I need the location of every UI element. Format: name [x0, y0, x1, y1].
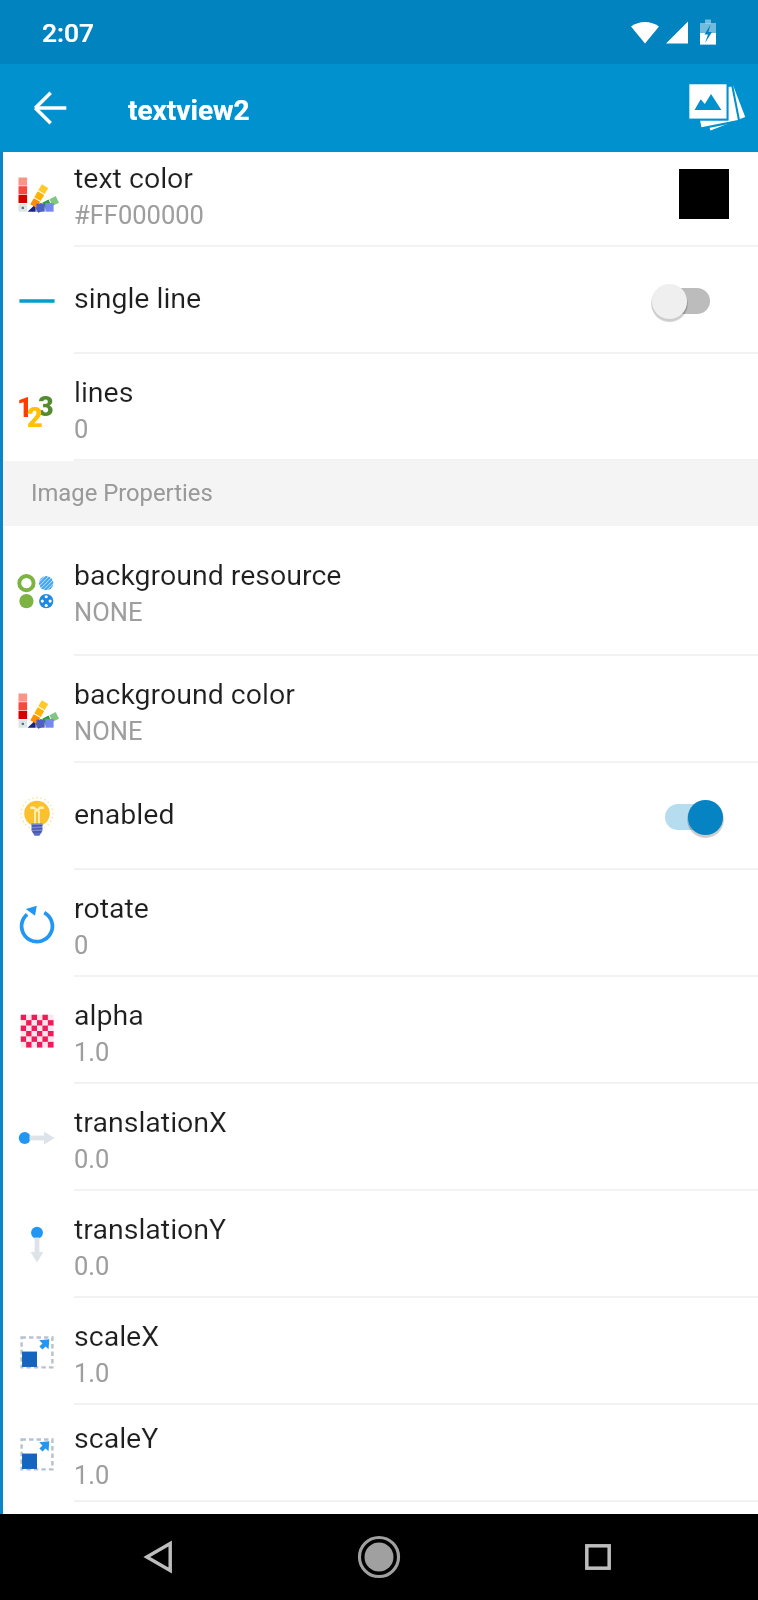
staticText: background resource	[74, 559, 342, 592]
staticText: 3	[38, 391, 54, 423]
staticText: 2	[27, 402, 43, 434]
staticText: Image Properties	[31, 479, 213, 507]
staticText: 1	[17, 392, 33, 424]
staticText: NONE	[74, 716, 143, 746]
button[interactable]: scaleX	[0, 1298, 758, 1405]
button[interactable]: background resource	[0, 526, 758, 656]
button[interactable]: background color	[0, 656, 758, 763]
button[interactable]	[665, 281, 710, 321]
button[interactable]: Recent apps	[563, 1522, 633, 1592]
button[interactable]: text color	[0, 152, 758, 247]
staticText: translationX	[74, 1106, 227, 1139]
button[interactable]: Navigate up	[20, 78, 80, 138]
staticText: NONE	[74, 597, 143, 627]
button[interactable]: translationX	[0, 1084, 758, 1191]
staticText: scaleX	[74, 1320, 160, 1353]
button[interactable]: scaleY	[0, 1405, 758, 1502]
staticText: 1.0	[74, 1358, 110, 1388]
button[interactable]: translationY	[0, 1191, 758, 1298]
button[interactable]: alpha	[0, 977, 758, 1084]
button[interactable]: enabled	[0, 763, 758, 870]
staticText: 1.0	[74, 1037, 110, 1067]
staticText: 2:07	[42, 17, 95, 48]
staticText: text color	[74, 162, 193, 195]
button[interactable]: 1	[0, 354, 758, 461]
button[interactable]	[665, 797, 710, 837]
staticText: #FF000000	[74, 200, 204, 230]
staticText: rotate	[74, 892, 149, 925]
staticText: single line	[74, 282, 202, 315]
staticText: 0	[74, 414, 89, 444]
staticText: 0.0	[74, 1251, 110, 1281]
staticText: enabled	[74, 798, 175, 831]
staticText: textview2	[128, 94, 250, 127]
staticText: lines	[74, 376, 134, 409]
staticText: translationY	[74, 1213, 227, 1246]
button[interactable]: Home	[344, 1522, 414, 1592]
staticText: 0	[74, 930, 89, 960]
staticText: 1.0	[74, 1460, 110, 1490]
staticText: alpha	[74, 999, 144, 1032]
button[interactable]: Collections	[680, 74, 748, 142]
staticText: scaleY	[74, 1422, 159, 1455]
staticText: background color	[74, 678, 295, 711]
staticText: 0.0	[74, 1144, 110, 1174]
button[interactable]: Back	[125, 1522, 195, 1592]
button[interactable]: single line	[0, 247, 758, 354]
button[interactable]: rotate	[0, 870, 758, 977]
